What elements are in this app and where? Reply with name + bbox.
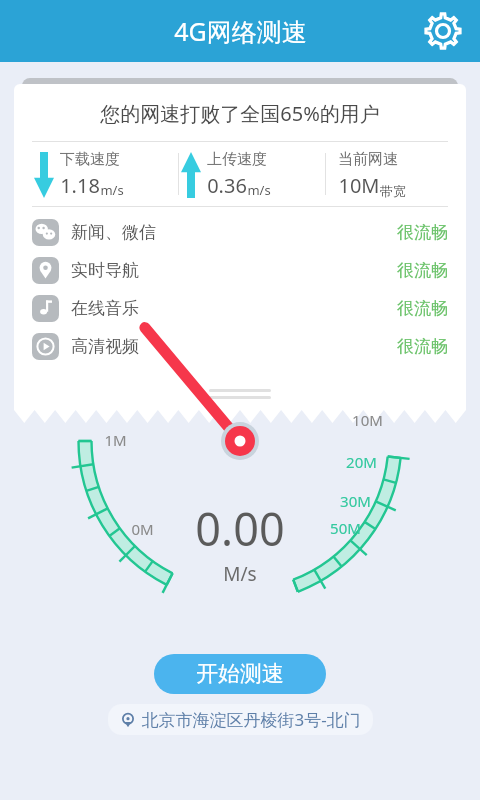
staticText: 4G网络测速	[174, 14, 307, 48]
staticText: 20M	[346, 452, 377, 472]
staticText: 上传速度	[207, 150, 267, 169]
staticText: 30M	[340, 491, 371, 511]
staticText: 当前网速	[338, 150, 398, 169]
staticText: 很流畅	[397, 222, 448, 243]
staticText: 实时导航	[71, 260, 139, 281]
staticText: 新闻、微信	[71, 222, 156, 243]
staticText: m/s	[100, 181, 124, 199]
staticText: 10M	[352, 410, 383, 430]
staticText: M/s	[223, 561, 257, 587]
staticText: 很流畅	[397, 260, 448, 281]
staticText: 0.36	[207, 172, 247, 199]
staticText: 在线音乐	[71, 298, 139, 319]
button[interactable]: 在线音乐	[32, 289, 448, 327]
staticText: 北京市海淀区丹棱街3号-北门	[141, 708, 361, 731]
staticText: 0.00	[195, 498, 285, 559]
staticText: 1.18	[60, 172, 100, 199]
staticText: 10M	[338, 172, 380, 199]
staticText: 高清视频	[71, 336, 139, 357]
staticText: m/s	[247, 181, 271, 199]
staticText: 开始测速	[196, 660, 284, 688]
staticText: 下载速度	[60, 150, 120, 169]
button[interactable]: 高清视频	[32, 327, 448, 365]
button[interactable]: 北京市海淀区丹棱街3号-北门	[120, 708, 361, 731]
button[interactable]: 开始测速	[154, 654, 326, 694]
button[interactable]: 新闻、微信	[32, 213, 448, 251]
staticText: 0M	[131, 519, 154, 539]
staticText: 1M	[104, 430, 127, 450]
staticText: 您的网速打败了全国65%的用户	[100, 100, 380, 127]
staticText: 很流畅	[397, 298, 448, 319]
staticText: 很流畅	[397, 336, 448, 357]
staticText: 带宽	[380, 183, 406, 199]
button[interactable]: 实时导航	[32, 251, 448, 289]
staticText: 50M	[330, 518, 361, 538]
button[interactable]: Settings	[420, 8, 466, 54]
